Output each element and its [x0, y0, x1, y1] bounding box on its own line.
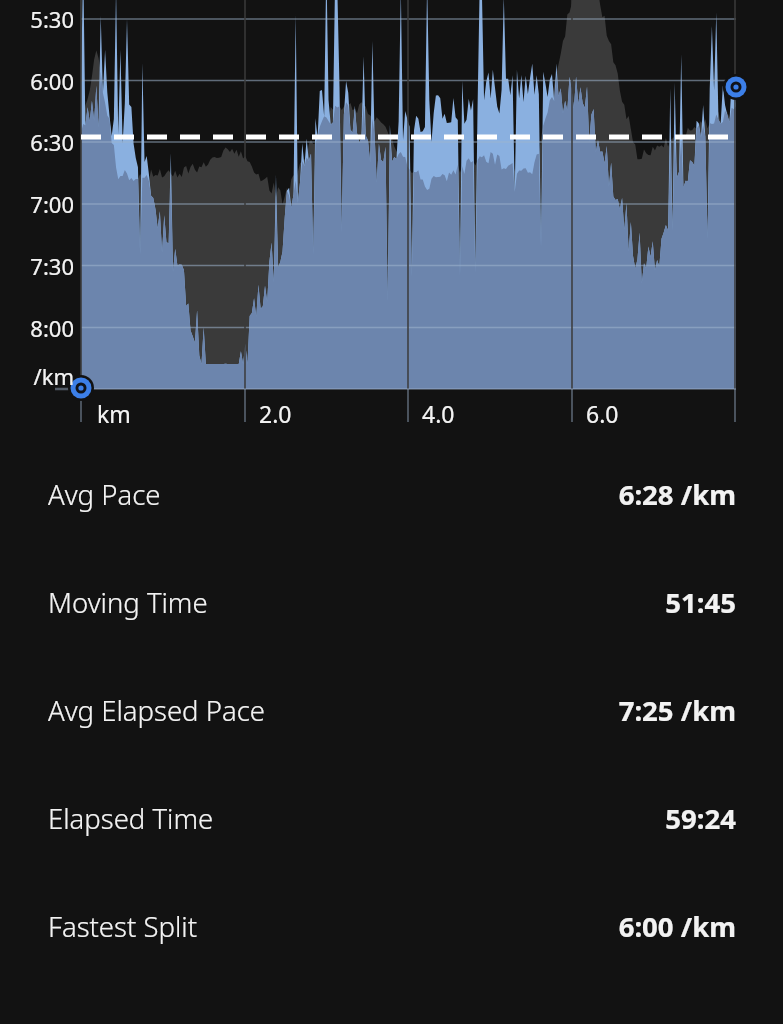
staticText: 6:28 /km [618, 476, 736, 513]
staticText: 6:00 /km [618, 908, 736, 945]
staticText: 6:30 [0, 127, 74, 157]
staticText: Elapsed Time [48, 800, 665, 837]
staticText: 7:30 [0, 251, 74, 281]
staticText: Avg Pace [48, 476, 618, 513]
staticText: 59:24 [665, 800, 736, 837]
staticText: 2.0 [259, 398, 292, 429]
staticText: Fastest Split [48, 908, 618, 945]
staticText: Moving Time [48, 584, 665, 621]
staticText: 6:00 [0, 66, 74, 96]
staticText: 8:00 [0, 313, 74, 343]
staticText: 4.0 [422, 398, 455, 429]
staticText: 51:45 [665, 584, 736, 621]
staticText: 7:00 [0, 189, 74, 219]
staticText: /km [0, 361, 74, 391]
other: Pace chart [0, 0, 783, 440]
button[interactable]: Avg Pace [0, 440, 783, 548]
staticText: 6.0 [586, 398, 619, 429]
staticText: 7:25 /km [618, 692, 736, 729]
button[interactable]: Fastest Split [0, 872, 783, 980]
button[interactable]: Elapsed Time [0, 764, 783, 872]
button[interactable]: Moving Time [0, 548, 783, 656]
button[interactable]: Avg Elapsed Pace [0, 656, 783, 764]
staticText: 5:30 [0, 4, 74, 34]
staticText: Avg Elapsed Pace [48, 692, 618, 729]
staticText: km [97, 398, 131, 429]
